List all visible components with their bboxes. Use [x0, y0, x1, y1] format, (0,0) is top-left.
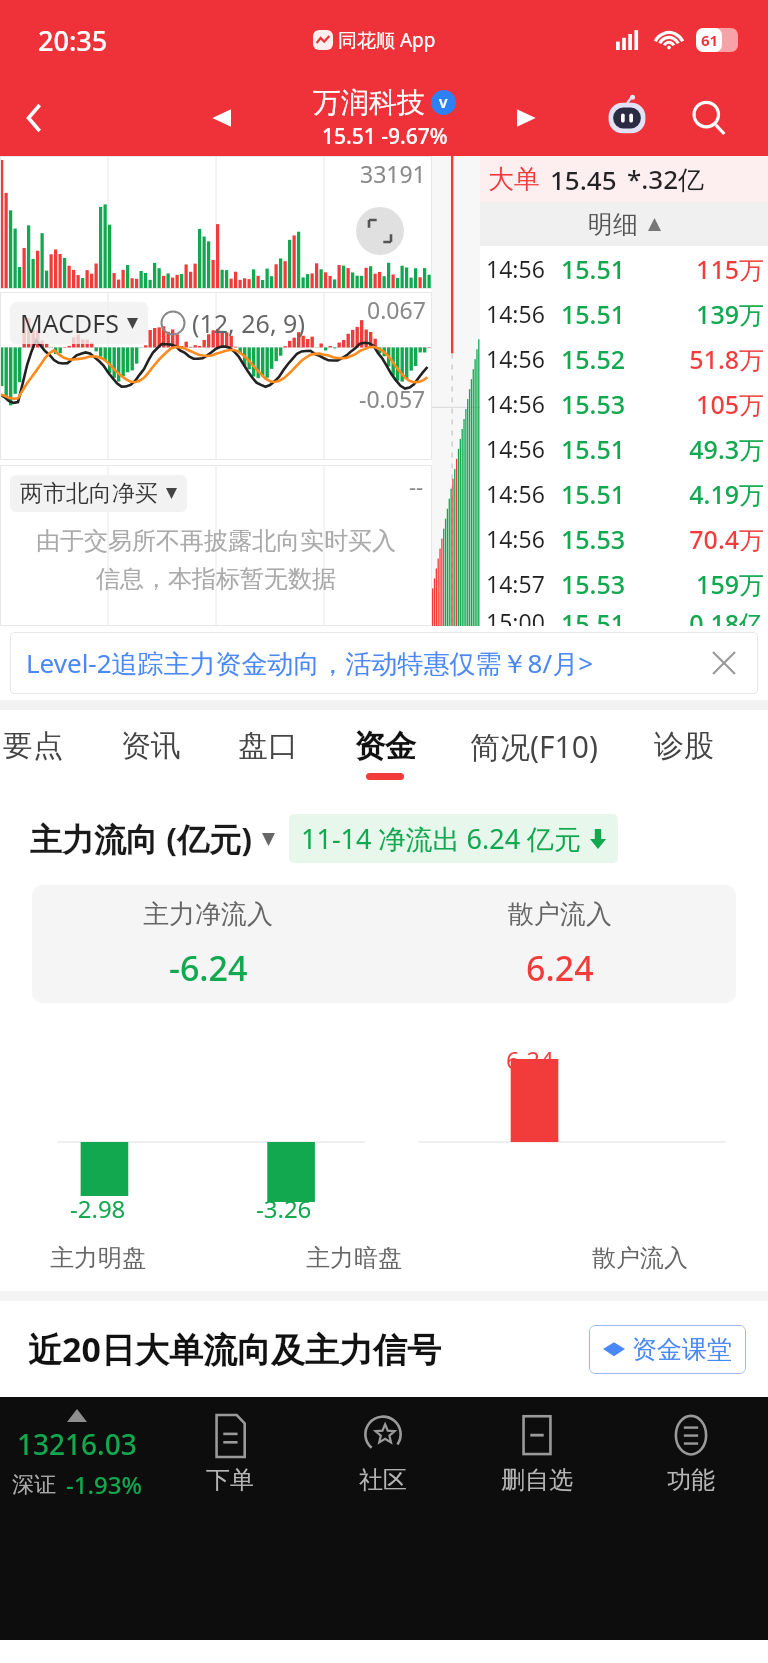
button[interactable]: 资金课堂 [589, 1325, 746, 1374]
staticText: 盘口 [238, 727, 298, 765]
staticText: 资金 [354, 727, 416, 766]
button[interactable]: Next stock [498, 88, 558, 148]
button[interactable]: Close [700, 639, 748, 687]
staticText: (12, 26, 9) [192, 306, 305, 340]
staticText: 信息，本指标暂无数据 [96, 564, 336, 594]
staticText: -6.24 [169, 945, 248, 991]
staticText: 同花顺 App [338, 27, 436, 53]
staticText: 简况(F10) [470, 726, 598, 767]
staticText: 主力流向 (亿元) [30, 817, 253, 861]
button[interactable]: 14:57 [480, 561, 768, 606]
staticText: 14:56 [486, 433, 561, 464]
staticText: 15.51 -9.67% [322, 122, 448, 151]
staticText: -1.93% [66, 1468, 142, 1501]
button[interactable]: 主力流向 (亿元) [30, 817, 275, 861]
button[interactable]: 万润科技 [313, 85, 456, 151]
staticText: 49.3万 [646, 432, 764, 466]
staticText: 散户流入 [592, 1243, 688, 1273]
staticText: 15:00 [486, 606, 561, 626]
button[interactable]: 主力净流入 [32, 885, 736, 1003]
staticText: 主力净流入 [143, 898, 273, 931]
staticText: 11-14 净流出 6.24 亿元 [301, 820, 582, 857]
staticText: 13216.03 [17, 1425, 137, 1463]
staticText: 0.067 [367, 294, 426, 325]
staticText: 删自选 [501, 1465, 573, 1495]
button[interactable]: Back [0, 83, 70, 153]
button[interactable]: 14:56 [480, 471, 768, 516]
staticText: 15.53 [561, 387, 646, 421]
staticText: MACDFS [20, 306, 119, 340]
staticText: 诊股 [654, 727, 714, 765]
staticText: 139万 [646, 297, 764, 331]
button[interactable]: 15:00 [480, 606, 768, 626]
button[interactable]: 14:56 [480, 246, 768, 291]
staticText: 资讯 [121, 727, 181, 765]
staticText: V [439, 94, 448, 112]
button[interactable]: Fullscreen chart [356, 207, 404, 255]
staticText: 大单 [488, 163, 540, 196]
staticText: 6.24 [506, 1043, 554, 1076]
staticText: 由于交易所不再披露北向实时买入 [36, 526, 396, 556]
staticText: 115万 [646, 252, 764, 286]
button[interactable]: 14:56 [480, 516, 768, 561]
staticText: 下单 [206, 1465, 254, 1495]
staticText: Level-2追踪主力资金动向，活动特惠仅需￥8/月> [26, 645, 594, 681]
staticText: 14:56 [486, 388, 561, 419]
button[interactable]: 资金 [326, 710, 443, 796]
staticText: -3.26 [256, 1192, 312, 1225]
button[interactable]: 简况(F10) [443, 710, 625, 796]
staticText: 15.53 [561, 522, 646, 556]
button[interactable]: 14:56 [480, 381, 768, 426]
staticText: 15.52 [561, 342, 646, 376]
staticText: 资金课堂 [632, 1334, 732, 1365]
staticText: 15.51 [561, 432, 646, 466]
staticText: -- [409, 471, 424, 501]
button[interactable]: 14:56 [480, 426, 768, 471]
button[interactable]: 明细 [480, 202, 768, 246]
button[interactable]: 功能 [614, 1397, 768, 1640]
staticText: 61 [701, 30, 719, 50]
staticText: 14:56 [486, 478, 561, 509]
button[interactable]: 两市北向净买 [10, 475, 187, 512]
staticText: 散户流入 [508, 898, 612, 931]
staticText: 105万 [646, 387, 764, 421]
staticText: -0.057 [359, 383, 426, 414]
button[interactable]: Previous stock [190, 88, 250, 148]
button[interactable]: 社区 [306, 1397, 460, 1640]
staticText: 两市北向净买 [20, 479, 158, 508]
button[interactable]: 13216.03 [0, 1397, 153, 1501]
button[interactable]: Search [678, 87, 740, 149]
staticText: 15.51 [561, 252, 646, 286]
button[interactable]: 11-14 净流出 6.24 亿元 [289, 814, 618, 863]
button[interactable]: 要点 [0, 710, 92, 796]
staticText: 明细 [588, 209, 638, 240]
staticText: 33191 [360, 158, 426, 189]
button[interactable]: 14:56 [480, 336, 768, 381]
staticText: 主力明盘 [50, 1243, 146, 1273]
staticText: 14:57 [486, 568, 561, 599]
staticText: 万润科技 [313, 85, 425, 120]
staticText: 159万 [646, 567, 764, 601]
button[interactable]: 盘口 [209, 710, 326, 796]
staticText: 近20日大单流向及主力信号 [28, 1326, 441, 1372]
staticText: 4.19万 [646, 477, 764, 511]
staticText: -2.98 [70, 1192, 126, 1225]
button[interactable]: 删自选 [460, 1397, 614, 1640]
staticText: 14:56 [486, 343, 561, 374]
button[interactable]: Level-2追踪主力资金动向，活动特惠仅需￥8/月> [10, 632, 758, 694]
button[interactable]: AI assistant [596, 87, 658, 149]
staticText: 51.8万 [646, 342, 764, 376]
button[interactable]: MACDFS [10, 302, 148, 344]
staticText: 15.51 [561, 297, 646, 331]
button[interactable]: 下单 [153, 1397, 306, 1640]
staticText: 14:56 [486, 253, 561, 284]
staticText: 15.45 [550, 162, 617, 197]
staticText: 14:56 [486, 298, 561, 329]
staticText: 要点 [3, 727, 63, 765]
staticText: 14:56 [486, 523, 561, 554]
staticText: 15.53 [561, 567, 646, 601]
staticText: 20:35 [38, 22, 108, 59]
button[interactable]: 14:56 [480, 291, 768, 336]
button[interactable]: 资讯 [92, 710, 209, 796]
button[interactable]: 诊股 [625, 710, 742, 796]
